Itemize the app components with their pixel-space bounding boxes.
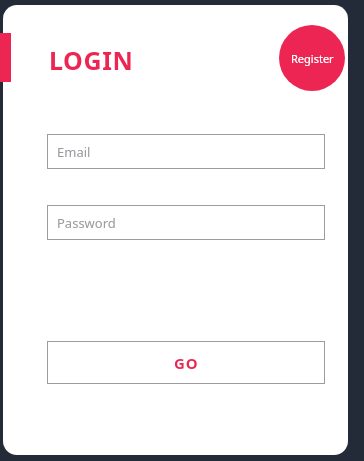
button[interactable]: Password bbox=[47, 205, 325, 240]
staticText: LOGIN bbox=[49, 43, 134, 75]
staticText: Register bbox=[291, 51, 334, 66]
staticText: GO bbox=[174, 353, 199, 373]
button[interactable]: Email bbox=[47, 134, 325, 169]
staticText: Password bbox=[57, 214, 116, 232]
button[interactable]: Register bbox=[279, 25, 345, 91]
button[interactable]: GO bbox=[47, 341, 325, 384]
staticText: Email bbox=[57, 143, 91, 161]
